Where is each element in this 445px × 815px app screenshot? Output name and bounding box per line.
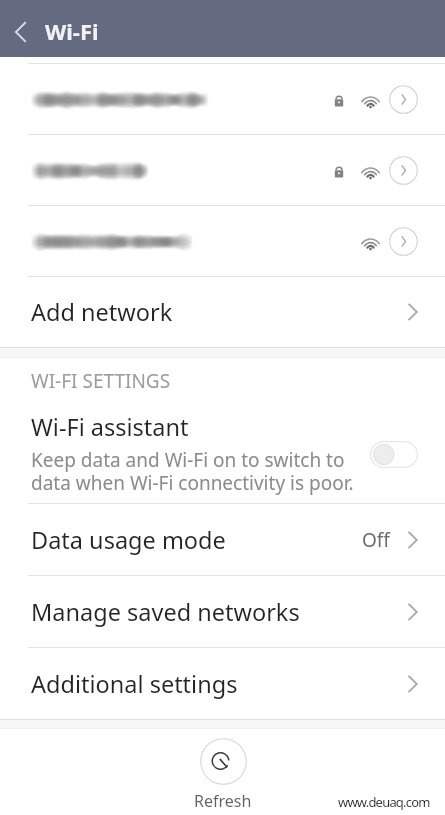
staticText: Wi-Fi [45,16,99,46]
button[interactable]: Back [0,0,41,57]
staticText: www.deuaq.com [338,793,430,811]
staticText: Manage saved networks [31,596,300,628]
button[interactable]: Manage saved networks [0,576,445,647]
staticText: Keep data and Wi-Fi on to switch to data… [31,447,354,496]
button[interactable]: Add network [0,277,445,347]
staticText: Add network [31,296,173,328]
button[interactable]: Refresh [194,738,252,812]
button[interactable] [0,135,445,205]
button[interactable] [0,64,445,134]
button[interactable]: Wi-Fi assistant toggle [370,440,418,468]
staticText: Additional settings [31,668,238,700]
button[interactable]: Additional settings [0,648,445,719]
staticText: Refresh [194,790,252,812]
staticText: WI-FI SETTINGS [31,368,171,394]
staticText: Data usage mode [31,524,226,556]
button[interactable]: Data usage mode [0,504,445,575]
staticText: Off [362,527,390,553]
button[interactable] [0,206,445,276]
button[interactable]: Wi-Fi assistant [0,404,445,503]
staticText: Wi-Fi assistant [31,411,189,443]
